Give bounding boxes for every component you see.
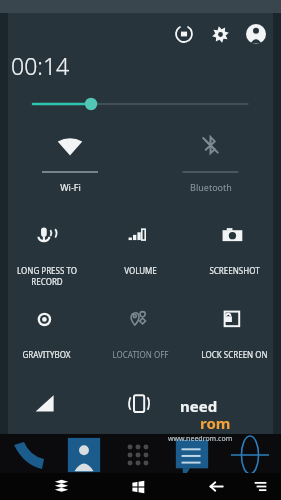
other: Mobile data [32,391,62,421]
staticText: Wi-Fi [60,181,81,193]
button[interactable]: Auto rotate [93,385,187,425]
button[interactable]: Home [121,473,155,500]
button[interactable]: VOLUME [93,217,187,295]
button[interactable]: Bluetooth [140,125,281,203]
staticText: LOCATION OFF [112,349,169,360]
staticText: RECORD [31,276,63,287]
button[interactable]: Battery 58 percent [171,21,197,47]
button[interactable]: Recent apps [44,473,78,500]
button[interactable]: LOCATION OFF [93,301,187,379]
button[interactable]: Brightness [0,93,281,115]
button[interactable]: Wi-Fi [0,125,140,203]
staticText: need [180,396,218,416]
staticText: www.needrom.com [168,434,233,444]
staticText: SCREENSHOT [209,265,260,276]
button[interactable]: SCREENSHOT [187,217,281,295]
button[interactable]: Back [199,473,233,500]
staticText: VOLUME [124,265,157,276]
button[interactable]: User account [243,21,269,47]
staticText: Bluetooth [190,181,232,193]
button[interactable]: Settings [207,21,233,47]
staticText: GRAVITYBOX [22,349,71,360]
other: Auto rotate [125,391,155,421]
staticText: 00:14 [11,50,70,81]
button[interactable]: Menu [245,473,275,500]
button[interactable]: LOCK SCREEN ON [187,301,281,379]
button[interactable]: LONG PRESS TO [0,217,93,295]
button[interactable]: GRAVITYBOX [0,301,93,379]
staticText: LONG PRESS TO [17,265,77,276]
staticText: LOCK SCREEN ON [201,349,268,360]
button[interactable]: Mobile data [0,385,93,425]
staticText: rom [200,413,231,433]
